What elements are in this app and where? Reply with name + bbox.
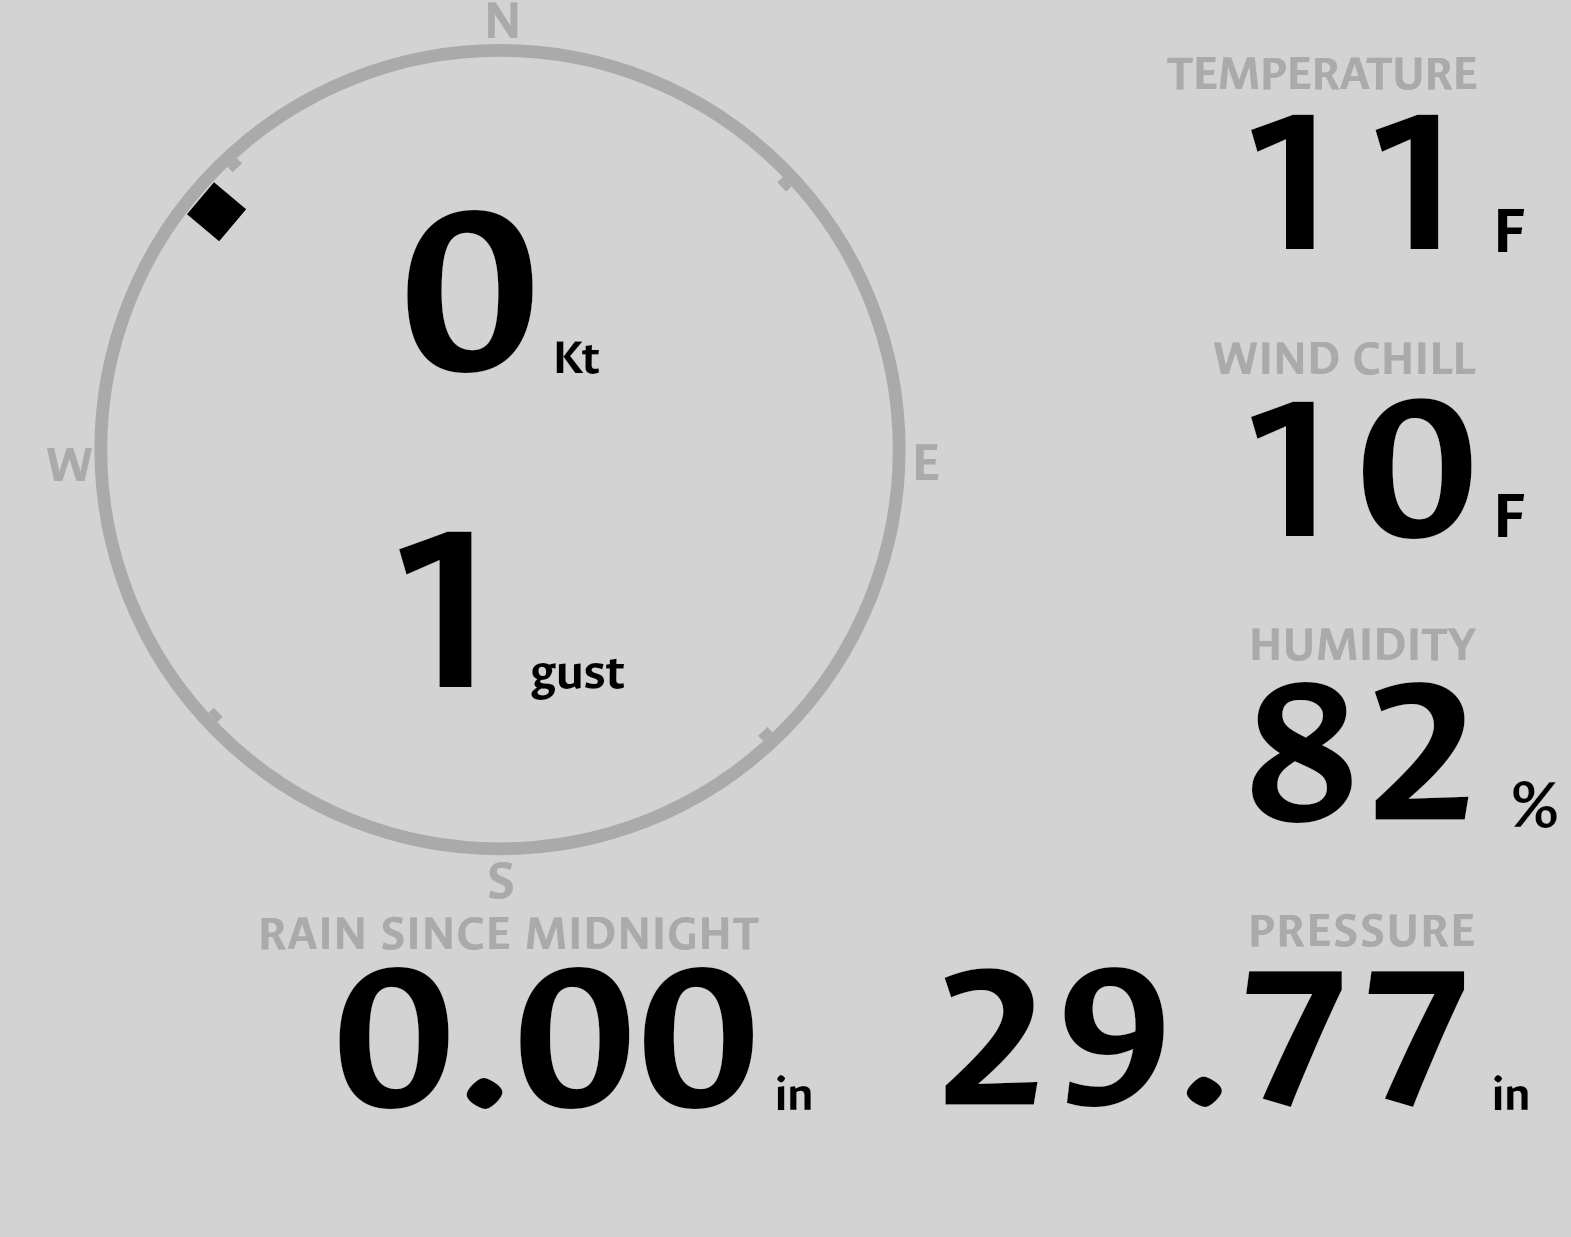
staticText: % bbox=[1511, 761, 1559, 849]
staticText: F bbox=[1493, 189, 1527, 273]
staticText: RAIN SINCE MIDNIGHT bbox=[258, 903, 760, 964]
staticText: PRESSURE bbox=[1248, 900, 1478, 961]
staticText: 29.77 bbox=[934, 909, 1480, 1169]
button[interactable]: Pressure 29.77 in bbox=[880, 880, 1571, 1130]
staticText: WIND CHILL bbox=[1213, 328, 1477, 389]
staticText: gust bbox=[531, 639, 625, 704]
staticText: 10 bbox=[1231, 338, 1486, 602]
button[interactable]: Wind chill 10 F bbox=[1100, 300, 1571, 580]
staticText: 11 bbox=[1231, 51, 1481, 315]
staticText: 0 bbox=[401, 140, 540, 445]
staticText: S bbox=[487, 847, 515, 915]
staticText: HUMIDITY bbox=[1249, 614, 1477, 675]
button[interactable]: Rain since midnight 0.00 in bbox=[230, 880, 830, 1130]
button[interactable]: Temperature 11 F bbox=[1100, 20, 1571, 290]
button[interactable]: Humidity 82 percent bbox=[1100, 590, 1571, 870]
staticText: 1 bbox=[376, 458, 513, 763]
staticText: TEMPERATURE bbox=[1167, 43, 1479, 104]
staticText: Kt bbox=[553, 327, 600, 388]
staticText: W bbox=[46, 433, 94, 497]
staticText: E bbox=[912, 429, 941, 497]
staticText: 0.00 bbox=[334, 907, 763, 1172]
staticText: 82 bbox=[1243, 623, 1486, 886]
staticText: N bbox=[484, 0, 522, 55]
staticText: in bbox=[775, 1064, 814, 1125]
staticText: F bbox=[1493, 474, 1527, 558]
button[interactable]: Wind speed and direction bbox=[95, 44, 906, 855]
staticText: in bbox=[1492, 1064, 1531, 1125]
